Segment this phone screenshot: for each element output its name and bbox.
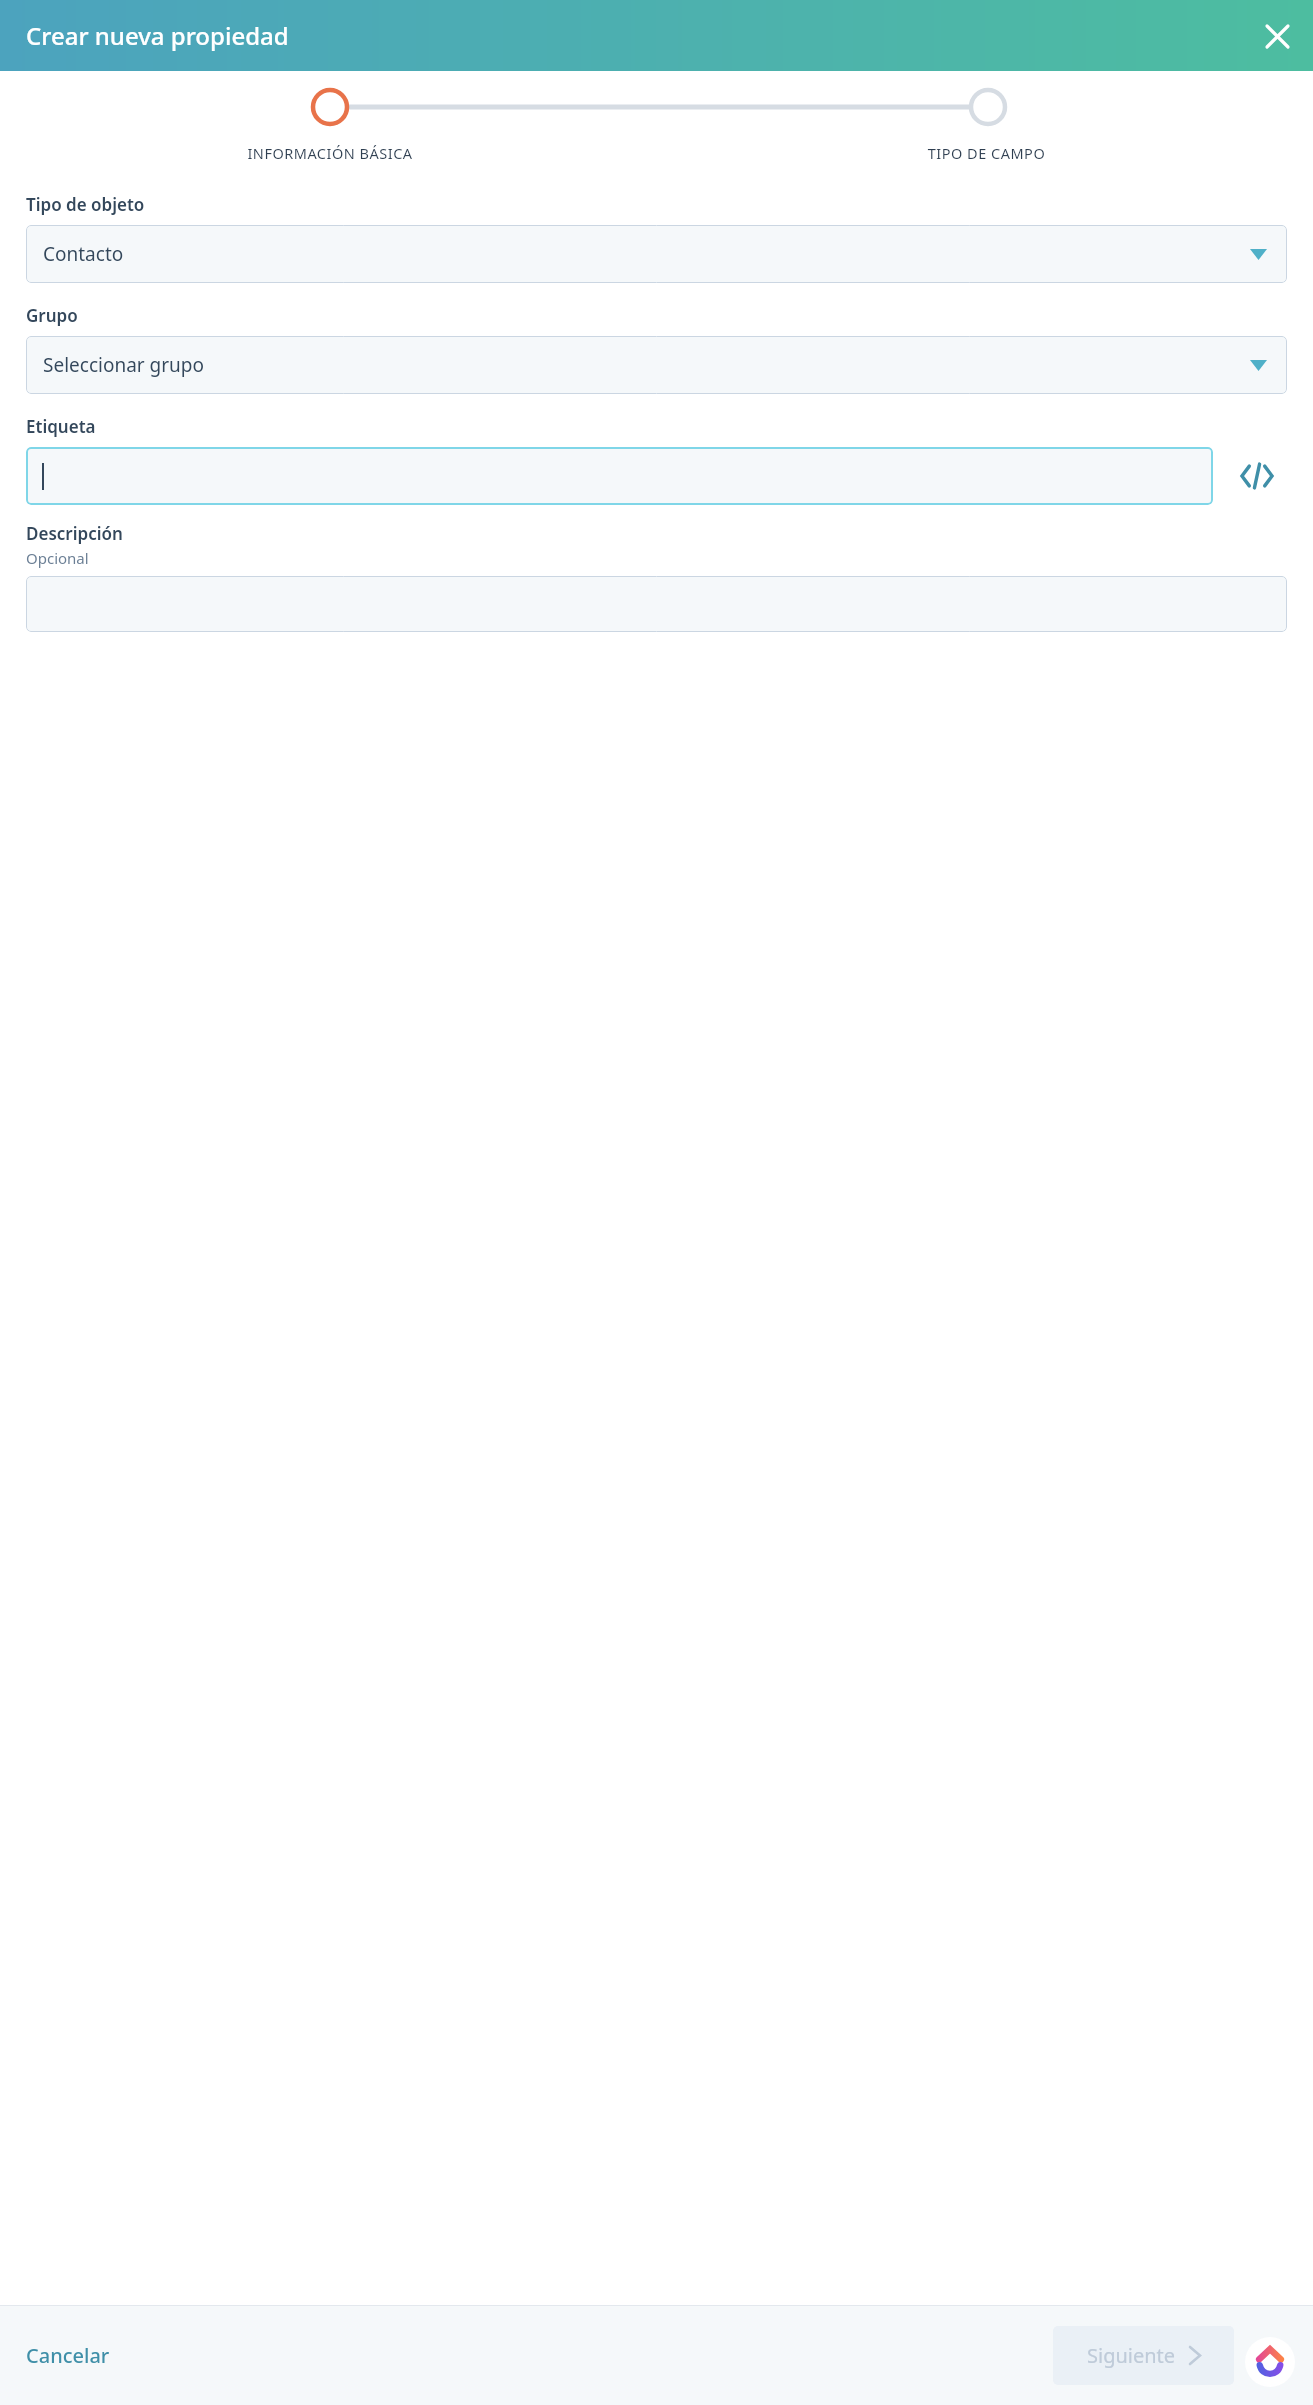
staticText: Siguiente [1087, 2342, 1176, 2369]
staticText: Seleccionar grupo [43, 352, 205, 378]
button[interactable]: Contacto [26, 225, 1287, 283]
button[interactable]: Chat widget [1245, 2337, 1295, 2387]
staticText: Tipo de objeto [26, 193, 145, 216]
staticText: Cancelar [26, 2342, 110, 2369]
staticText: Grupo [26, 304, 78, 327]
staticText: Opcional [26, 548, 89, 568]
staticText: Crear nueva propiedad [26, 19, 289, 52]
staticText: Etiqueta [26, 415, 96, 438]
button[interactable] [26, 576, 1287, 632]
staticText: Contacto [43, 241, 124, 267]
staticText: TIPO DE CAMPO [660, 143, 1313, 163]
button[interactable]: Seleccionar grupo [26, 336, 1287, 394]
button[interactable]: Siguiente [1053, 2326, 1234, 2385]
staticText: Descripción [26, 522, 123, 545]
button[interactable]: Cerrar [1255, 14, 1299, 58]
button[interactable]: Insertar código [1235, 454, 1279, 498]
button[interactable]: Cancelar [14, 2332, 122, 2379]
button[interactable] [26, 447, 1213, 505]
staticText: INFORMACIÓN BÁSICA [0, 143, 660, 163]
